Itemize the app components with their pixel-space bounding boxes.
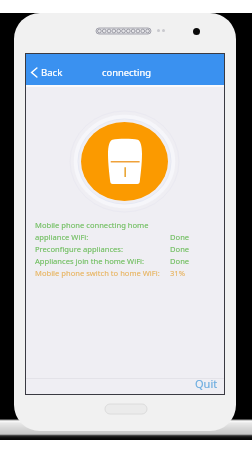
staticText: connecting [102, 66, 151, 79]
staticText: Mobile phone switch to home WiFi: [35, 268, 160, 278]
staticText: Quit [195, 376, 218, 391]
staticText: Mobile phone connecting home [35, 220, 149, 230]
button[interactable]: Back [26, 62, 69, 83]
staticText: Done [170, 244, 190, 254]
staticText: Back [41, 66, 63, 79]
staticText: Preconfigure appliances: [35, 244, 124, 254]
staticText: Done [170, 232, 190, 242]
button[interactable]: Quit [183, 372, 224, 394]
staticText: Appliances join the home WiFi: [35, 256, 145, 266]
staticText: appliance WiFi: [35, 232, 89, 242]
staticText: Done [170, 256, 190, 266]
staticText: 31% [170, 268, 185, 278]
